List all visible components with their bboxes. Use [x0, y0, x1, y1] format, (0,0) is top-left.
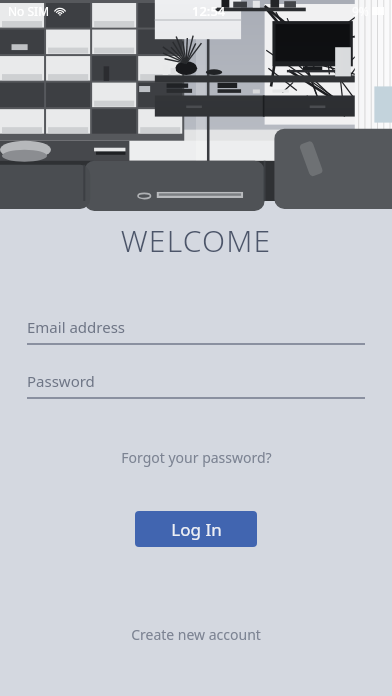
- staticText: WELCOME: [0, 220, 392, 261]
- button[interactable]: Email address: [0, 317, 392, 345]
- button[interactable]: Log In: [135, 511, 257, 547]
- button[interactable]: Create new account: [0, 619, 392, 650]
- button[interactable]: Forgot your password?: [0, 442, 392, 473]
- button[interactable]: Password: [0, 371, 392, 399]
- staticText: 12:54: [192, 2, 226, 20]
- staticText: Password: [27, 371, 95, 391]
- staticText: Forgot your password?: [121, 448, 272, 467]
- staticText: Log In: [171, 518, 222, 541]
- staticText: 9%: [352, 3, 369, 19]
- staticText: Email address: [27, 317, 126, 337]
- staticText: Create new account: [131, 625, 261, 644]
- staticText: No SIM: [8, 3, 50, 19]
